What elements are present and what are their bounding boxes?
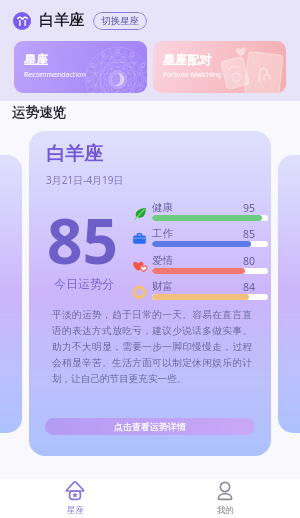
staticText: 星座配对 <box>163 52 211 67</box>
staticText: 85 <box>47 198 118 282</box>
staticText: 星座 <box>24 52 48 67</box>
staticText: 84 <box>243 280 256 294</box>
staticText: 运势速览 <box>12 104 66 121</box>
staticText: 白羊座 <box>39 11 84 30</box>
button[interactable]: 星座 <box>14 41 147 93</box>
staticText: 白羊座 <box>46 142 103 166</box>
staticText: 我的 <box>217 505 234 516</box>
staticText: Recommendaction <box>24 70 86 80</box>
button[interactable]: 我的 <box>150 479 300 518</box>
staticText: 星座 <box>67 505 84 516</box>
staticText: 点击查看运势详情 <box>114 421 186 432</box>
staticText: Fortune Matching <box>163 70 222 80</box>
button[interactable]: 星座 <box>0 479 150 518</box>
button[interactable]: 切换星座 <box>93 12 147 30</box>
staticText: 财富 <box>152 280 173 293</box>
button[interactable]: 点击查看运势详情 <box>45 418 255 435</box>
staticText: 今日运势分 <box>54 276 114 291</box>
staticText: 95 <box>243 201 256 215</box>
staticText: 平淡的运势，趋于日常的一天。容易在直言直语的表达方式放吃亏，建议少说话多做实事。… <box>52 309 252 385</box>
staticText: 健康 <box>152 201 173 214</box>
staticText: 切换星座 <box>101 15 139 27</box>
staticText: 85 <box>243 227 256 241</box>
staticText: 80 <box>243 254 256 268</box>
button[interactable]: 星座配对 <box>153 41 286 93</box>
staticText: 工作 <box>152 227 173 240</box>
staticText: 爱情 <box>152 254 173 267</box>
staticText: 3月21日-4月19日 <box>46 173 124 187</box>
